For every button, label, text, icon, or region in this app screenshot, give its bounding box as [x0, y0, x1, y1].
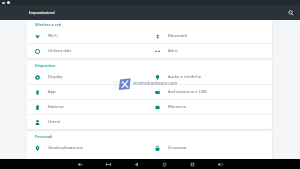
- staticText: Impostazioni: [29, 10, 55, 16]
- staticText: Utenti: [48, 119, 61, 125]
- button[interactable]: Batteria: [27, 100, 147, 114]
- staticText: Batteria: [48, 104, 64, 110]
- button[interactable]: Utenti: [27, 115, 147, 129]
- staticText: Archiviazione e USB: [168, 89, 207, 95]
- staticText: Audio e notifiche: [168, 74, 202, 80]
- button[interactable]: Geolocalizzazione: [27, 141, 147, 155]
- button[interactable]: Volume down: [66, 159, 94, 169]
- staticText: Geolocalizzazione: [48, 145, 83, 151]
- staticText: Altro: [168, 48, 178, 54]
- button[interactable]: Home: [150, 159, 178, 169]
- button[interactable]: Screenshot: [94, 159, 122, 169]
- staticText: Wi-Fi: [48, 33, 58, 39]
- button[interactable]: Audio e notifiche: [147, 70, 272, 84]
- button[interactable]: Bluetooth: [147, 29, 272, 43]
- staticText: Personali: [35, 134, 53, 139]
- button[interactable]: Memoria: [147, 100, 272, 114]
- staticText: Utilizzo dati: [48, 48, 71, 54]
- staticText: Sicurezza: [168, 145, 187, 151]
- button[interactable]: Altro: [147, 44, 272, 58]
- staticText: Dispositivo: [35, 63, 56, 68]
- button[interactable]: Display: [27, 70, 147, 84]
- button[interactable]: Search: [286, 8, 296, 18]
- button[interactable]: Volume up: [206, 159, 234, 169]
- button[interactable]: Recent apps: [178, 159, 206, 169]
- button[interactable]: App: [27, 85, 147, 99]
- button[interactable]: Wi-Fi: [27, 29, 147, 43]
- staticText: Bluetooth: [168, 33, 188, 39]
- staticText: Memoria: [168, 104, 186, 110]
- button[interactable]: Back: [122, 159, 150, 169]
- staticText: xtremehardware.com: [133, 80, 178, 86]
- staticText: App: [48, 89, 56, 95]
- staticText: Display: [48, 74, 63, 80]
- button[interactable]: Sicurezza: [147, 141, 272, 155]
- button[interactable]: Archiviazione e USB: [147, 85, 272, 99]
- staticText: Wireless e reti: [35, 22, 62, 27]
- button[interactable]: Utilizzo dati: [27, 44, 147, 58]
